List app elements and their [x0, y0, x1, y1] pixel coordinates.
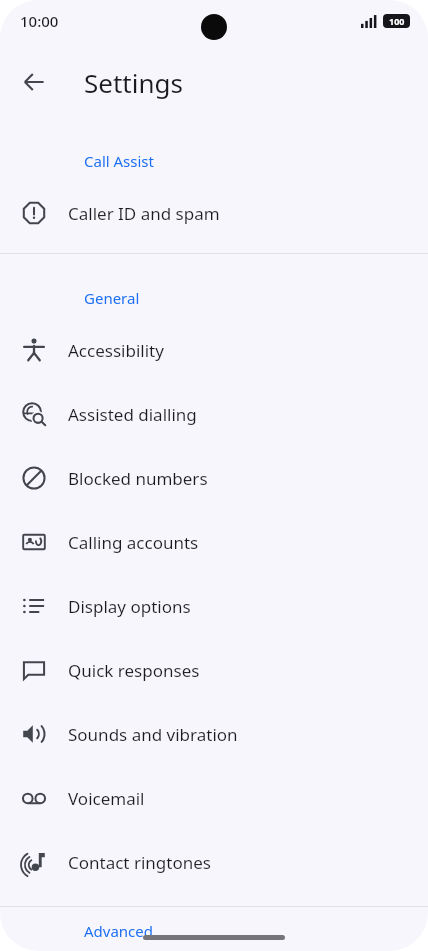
staticText: Contact ringtones — [68, 851, 211, 874]
button[interactable]: Contact ringtones — [0, 830, 428, 894]
button[interactable]: Calling accounts — [0, 510, 428, 574]
button[interactable]: Back — [10, 58, 58, 106]
staticText: Calling accounts — [68, 531, 199, 554]
button[interactable]: Display options — [0, 574, 428, 638]
staticText: 10:00 — [20, 11, 59, 31]
button[interactable]: Caller ID and spam — [0, 181, 428, 245]
staticText: Call Assist — [84, 151, 154, 171]
staticText: Voicemail — [68, 787, 145, 810]
staticText: 100 — [389, 15, 405, 27]
button[interactable]: Accessibility — [0, 318, 428, 382]
button[interactable]: Blocked numbers — [0, 446, 428, 510]
staticText: Assisted dialling — [68, 403, 197, 426]
staticText: Sounds and vibration — [68, 723, 238, 746]
staticText: Accessibility — [68, 339, 164, 362]
staticText: Settings — [84, 65, 183, 100]
staticText: Caller ID and spam — [68, 202, 220, 225]
staticText: Display options — [68, 595, 191, 618]
button[interactable]: Assisted dialling — [0, 382, 428, 446]
button[interactable]: Quick responses — [0, 638, 428, 702]
staticText: Blocked numbers — [68, 467, 208, 490]
button[interactable]: Sounds and vibration — [0, 702, 428, 766]
staticText: General — [84, 288, 140, 308]
staticText: Advanced — [84, 921, 154, 941]
staticText: Quick responses — [68, 659, 200, 682]
button[interactable]: Voicemail — [0, 766, 428, 830]
